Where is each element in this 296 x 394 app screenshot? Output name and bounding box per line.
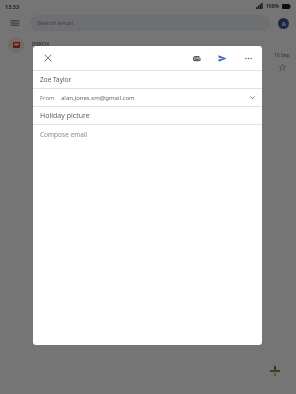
staticText: Compose email: [40, 130, 88, 139]
staticText: 100%: [266, 3, 280, 10]
staticText: INBOX: [32, 40, 50, 47]
button[interactable]: Search email: [30, 15, 270, 31]
button[interactable]: From: [33, 89, 262, 106]
button[interactable]: Close: [38, 48, 58, 68]
staticText: alan.jones.sm@gmail.com: [61, 94, 135, 102]
button[interactable]: Compose: [262, 358, 288, 384]
button[interactable]: Send: [212, 48, 232, 68]
button[interactable]: More options: [238, 48, 258, 68]
staticText: A: [282, 20, 286, 27]
button[interactable]: Attach file: [186, 48, 206, 68]
button[interactable]: Holiday picture: [33, 107, 262, 124]
button[interactable]: Compose email: [33, 125, 262, 345]
staticText: 16 Sep: [274, 52, 290, 59]
staticText: Search email: [37, 19, 74, 27]
staticText: Zoe Taylor: [40, 75, 72, 84]
button[interactable]: Menu: [0, 12, 30, 34]
button[interactable]: Account: [270, 12, 296, 34]
button[interactable]: Zoe Taylor: [33, 71, 262, 88]
staticText: From: [40, 94, 55, 102]
staticText: 13:33: [5, 3, 20, 10]
staticText: Holiday picture: [40, 111, 90, 121]
